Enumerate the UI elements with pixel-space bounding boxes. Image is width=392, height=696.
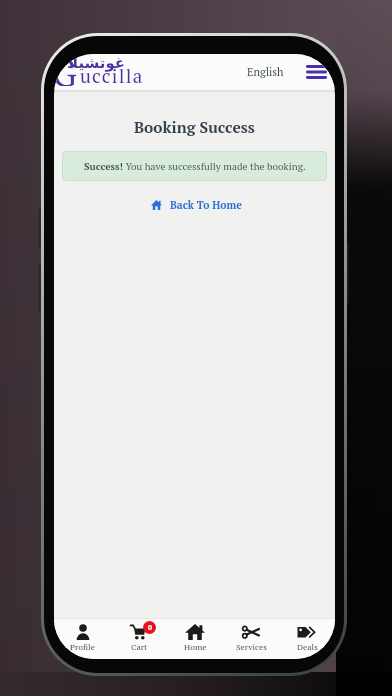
- staticText: Services: [236, 641, 267, 652]
- staticText: Success! You have successfully made the …: [84, 160, 306, 173]
- staticText: Booking Success: [134, 117, 255, 138]
- staticText: uccilla: [80, 63, 144, 88]
- staticText: Back To Home: [170, 198, 242, 212]
- button[interactable]: G: [54, 54, 170, 90]
- button[interactable]: Profile: [54, 619, 111, 659]
- button[interactable]: Services: [223, 619, 279, 659]
- button[interactable]: Back To Home: [56, 198, 335, 212]
- button[interactable]: Home: [167, 619, 223, 659]
- staticText: G: [54, 54, 77, 86]
- staticText: 0: [148, 623, 152, 632]
- staticText: Cart: [131, 641, 148, 652]
- staticText: Home: [184, 641, 207, 652]
- button[interactable]: [306, 65, 327, 79]
- staticText: Profile: [70, 641, 95, 652]
- staticText: English: [247, 65, 284, 80]
- staticText: Deals: [297, 641, 318, 652]
- staticText: غوتشيلا: [67, 54, 126, 71]
- button[interactable]: 0: [111, 619, 167, 659]
- button[interactable]: English: [247, 65, 284, 80]
- button[interactable]: Deals: [279, 619, 335, 659]
